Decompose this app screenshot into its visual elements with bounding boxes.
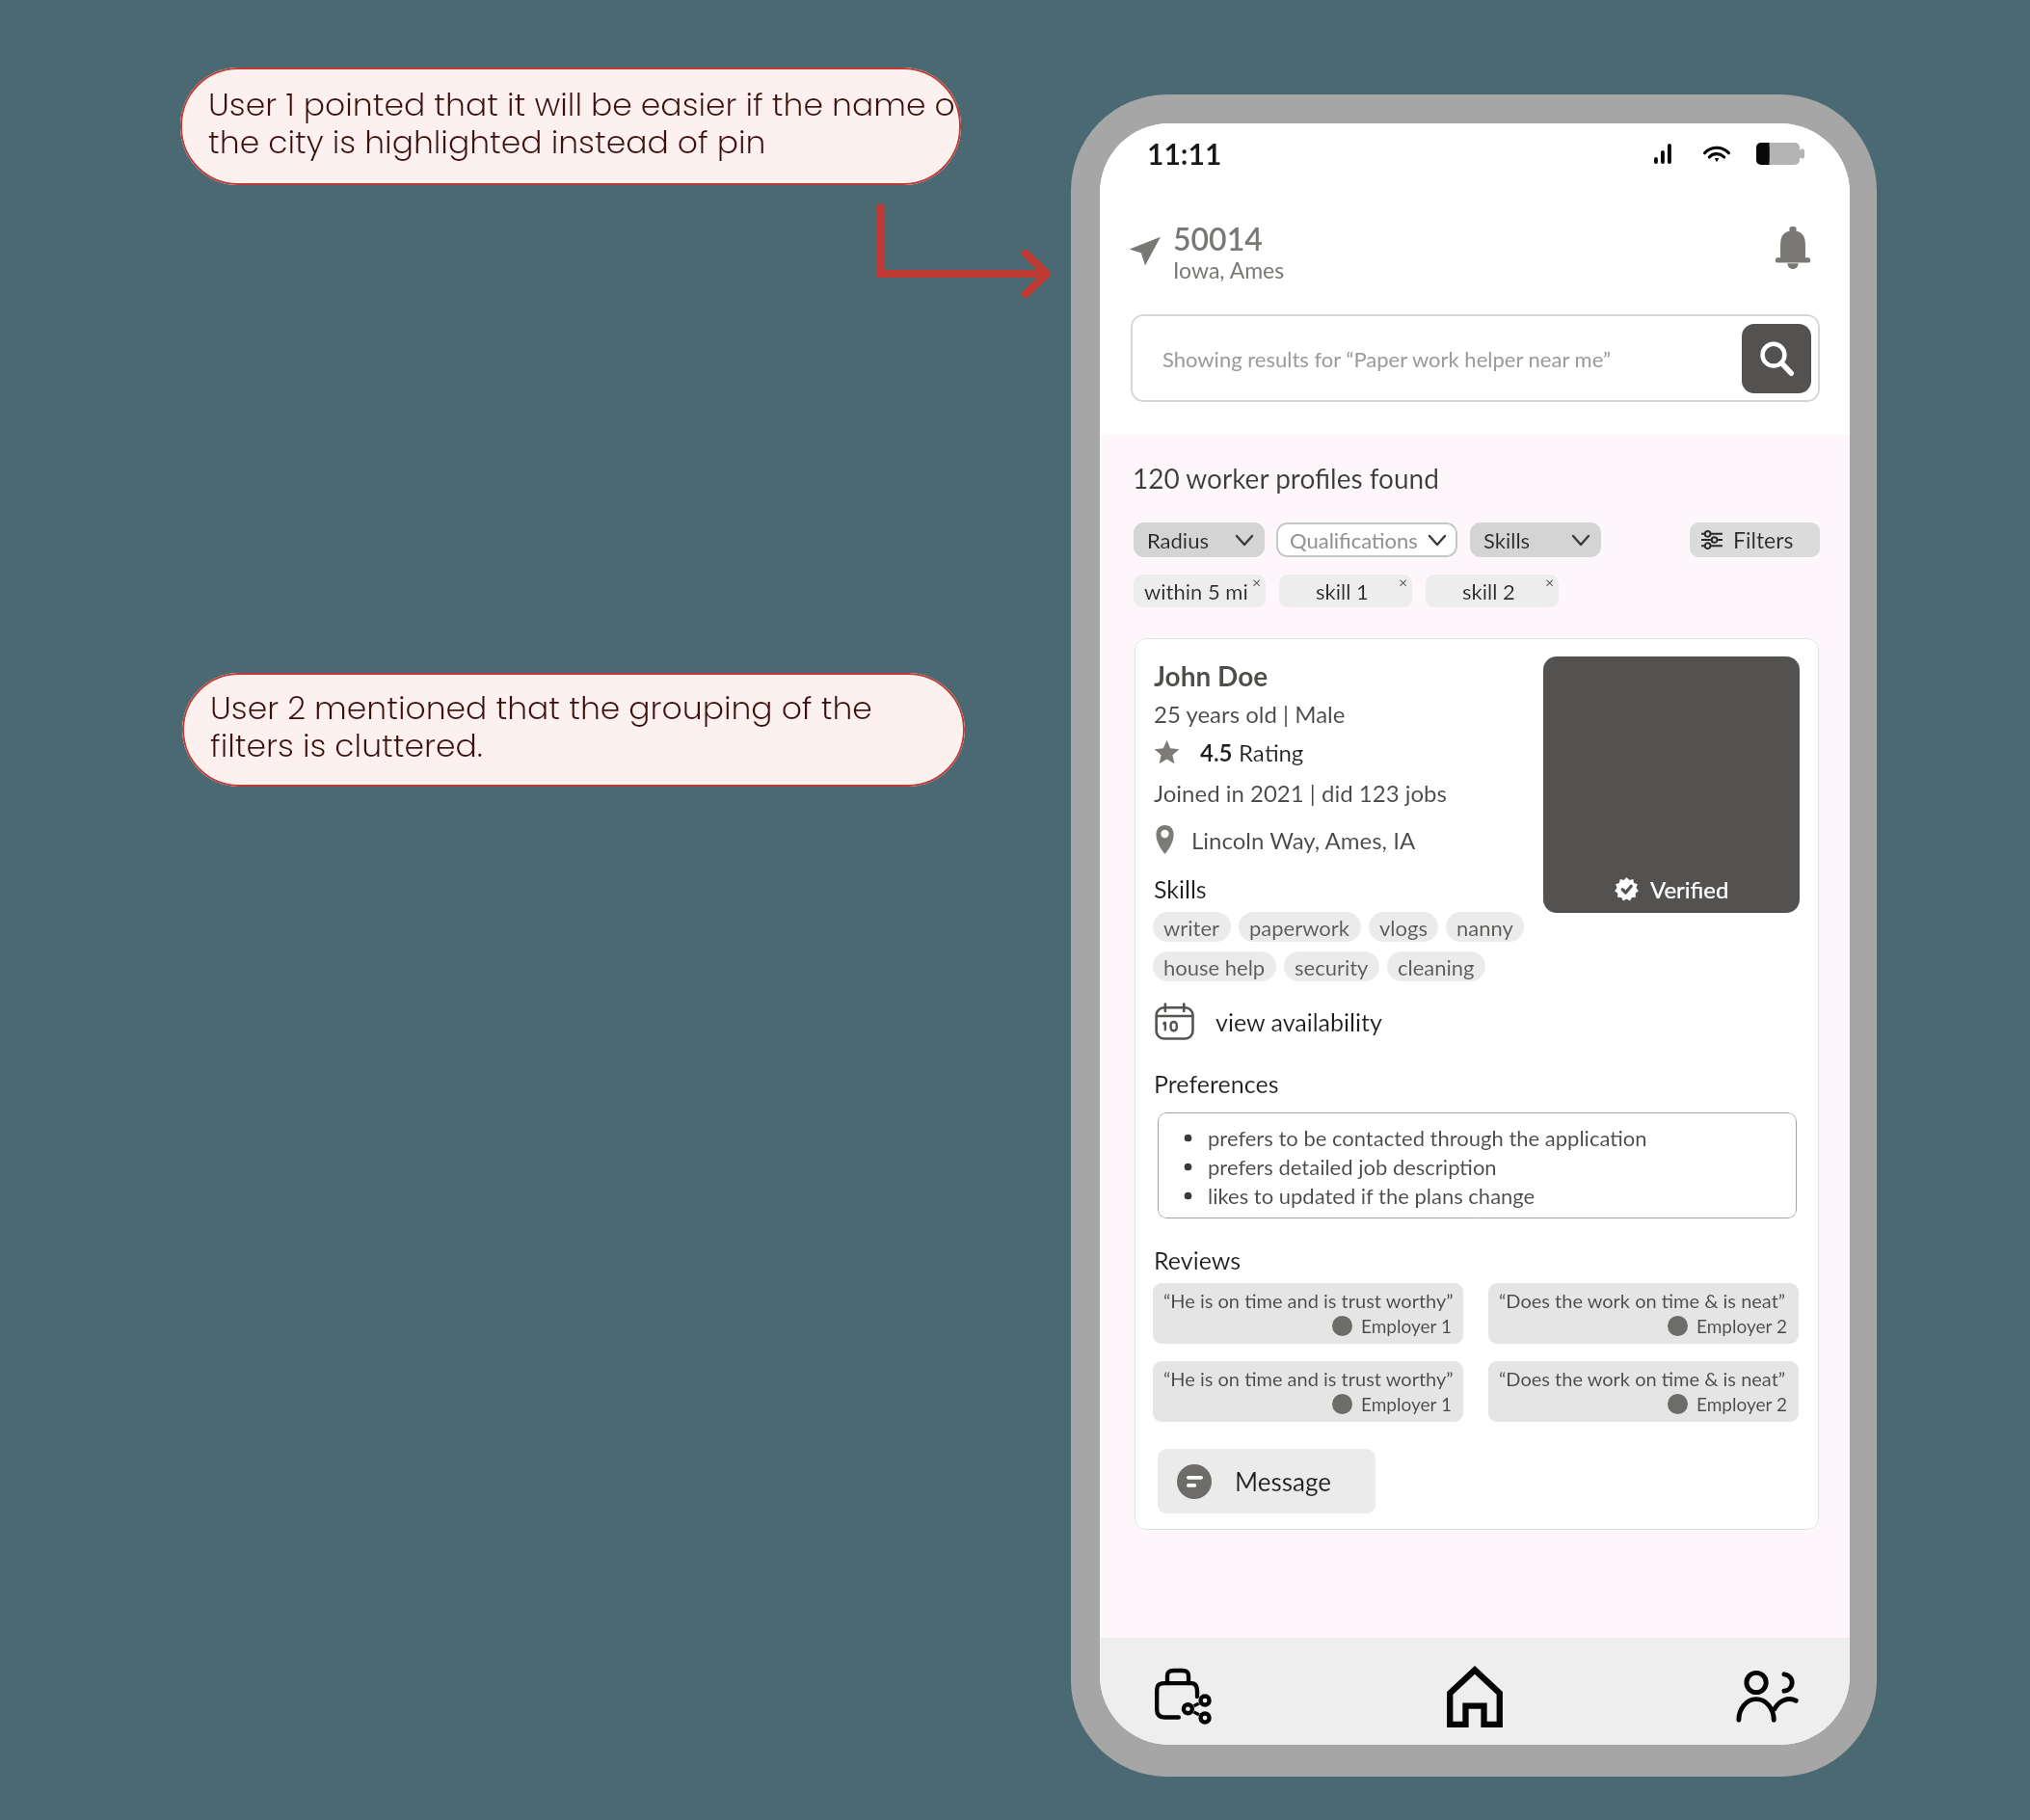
button[interactable]: “Does the work on time & is neat” — [1488, 1283, 1799, 1344]
button[interactable]: Location 50014 Iowa, Ames — [1129, 220, 1285, 283]
staticText: Skills — [1154, 874, 1207, 903]
staticText: prefers detailed job description — [1208, 1154, 1497, 1179]
staticText: John Doe — [1154, 659, 1269, 692]
staticText: Iowa, Ames — [1173, 256, 1285, 283]
staticText: Filters — [1733, 526, 1794, 553]
staticText: User 1 pointed that it will be easier if… — [208, 82, 961, 164]
staticText: Rating — [1239, 738, 1304, 766]
staticText: Employer 2 — [1696, 1315, 1787, 1337]
staticText: vlogs — [1379, 915, 1428, 940]
staticText: Lincoln Way, Ames, IA — [1191, 826, 1416, 854]
button[interactable]: Notifications — [1759, 215, 1827, 282]
button[interactable]: writer — [1153, 912, 1231, 942]
staticText: × — [1545, 575, 1555, 591]
button[interactable]: paperwork — [1239, 912, 1361, 942]
staticText: Message — [1235, 1466, 1331, 1496]
staticText: skill 1 — [1316, 578, 1369, 603]
staticText: Skills — [1483, 527, 1531, 552]
staticText: Showing results for “Paper work helper n… — [1162, 346, 1611, 371]
button[interactable]: “He is on time and is trust worthy” — [1153, 1283, 1463, 1344]
button[interactable]: People — [1711, 1638, 1827, 1745]
button[interactable]: Showing results for “Paper work helper n… — [1131, 314, 1820, 402]
staticText: house help — [1163, 954, 1266, 979]
button[interactable]: Message — [1158, 1449, 1376, 1513]
staticText: security — [1295, 954, 1369, 979]
staticText: Employer 1 — [1361, 1393, 1452, 1415]
button[interactable]: Jobs — [1127, 1638, 1242, 1745]
staticText: User 2 mentioned that the grouping of th… — [210, 685, 872, 767]
button[interactable]: security — [1284, 951, 1379, 981]
staticText: view availability — [1215, 1007, 1382, 1036]
staticText: Preferences — [1154, 1069, 1279, 1098]
button[interactable]: cleaning — [1387, 951, 1485, 981]
staticText: Reviews — [1154, 1245, 1242, 1274]
staticText: paperwork — [1249, 915, 1350, 940]
staticText: “He is on time and is trust worthy” — [1163, 1367, 1454, 1390]
button[interactable]: vlogs — [1369, 912, 1438, 942]
button[interactable]: Home — [1417, 1638, 1533, 1745]
staticText: Employer 1 — [1361, 1315, 1452, 1337]
button[interactable]: nanny — [1446, 912, 1524, 942]
staticText: skill 2 — [1462, 578, 1515, 603]
staticText: × — [1252, 575, 1262, 591]
button[interactable]: view availability — [1154, 1000, 1382, 1044]
staticText: 11:11 — [1147, 136, 1222, 171]
staticText: likes to updated if the plans change — [1208, 1183, 1536, 1208]
staticText: within 5 mi — [1144, 578, 1248, 603]
staticText: prefers to be contacted through the appl… — [1208, 1125, 1647, 1150]
button[interactable]: Qualifications — [1276, 522, 1457, 557]
staticText: Qualifications — [1290, 527, 1418, 552]
staticText: nanny — [1456, 915, 1513, 940]
button[interactable]: Search — [1742, 324, 1811, 393]
button[interactable]: Filters — [1690, 522, 1820, 557]
staticText: Employer 2 — [1696, 1393, 1787, 1415]
staticText: “He is on time and is trust worthy” — [1163, 1289, 1454, 1312]
staticText: 25 years old | Male — [1154, 700, 1346, 728]
button[interactable]: “Does the work on time & is neat” — [1488, 1361, 1799, 1422]
staticText: 120 worker profiles found — [1133, 462, 1439, 495]
staticText: 4.5 — [1200, 738, 1239, 766]
staticText: Verified — [1650, 875, 1729, 903]
button[interactable]: Radius — [1134, 522, 1265, 557]
button[interactable]: skill 2 — [1426, 575, 1559, 607]
staticText: writer — [1163, 915, 1220, 940]
staticText: Radius — [1147, 527, 1209, 552]
button[interactable]: Skills — [1470, 522, 1601, 557]
button[interactable]: within 5 mi — [1134, 575, 1266, 607]
button[interactable]: “He is on time and is trust worthy” — [1153, 1361, 1463, 1422]
button[interactable]: skill 1 — [1279, 575, 1412, 607]
staticText: cleaning — [1398, 954, 1475, 979]
staticText: 50014 — [1173, 220, 1263, 256]
staticText: “Does the work on time & is neat” — [1499, 1367, 1786, 1390]
staticText: Joined in 2021 | did 123 jobs — [1154, 779, 1447, 807]
staticText: “Does the work on time & is neat” — [1499, 1289, 1786, 1312]
staticText: × — [1399, 575, 1408, 591]
button[interactable]: house help — [1153, 951, 1276, 981]
